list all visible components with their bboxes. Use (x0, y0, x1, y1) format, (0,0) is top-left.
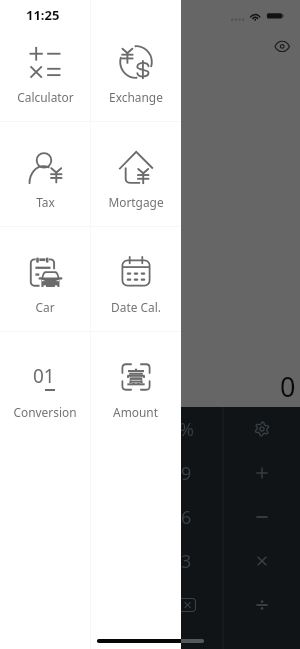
button[interactable]: Minus (250, 505, 274, 529)
staticText: Car (35, 299, 55, 315)
staticText: Amount (113, 404, 158, 420)
button[interactable]: Date Cal. (90, 227, 181, 332)
button[interactable]: Car (0, 227, 90, 332)
button[interactable]: Calculator (0, 17, 90, 122)
button[interactable]: Exchange (90, 17, 181, 122)
button[interactable]: 9 (149, 451, 223, 495)
staticText: Mortgage (108, 194, 164, 210)
staticText: Conversion (13, 404, 77, 420)
button[interactable]: Plus (250, 461, 274, 485)
button[interactable]: Mortgage (90, 122, 181, 227)
staticText: 01 (33, 363, 55, 389)
button[interactable]: History (271, 35, 293, 57)
staticText: Calculator (17, 89, 74, 105)
button[interactable]: Backspace (176, 598, 196, 612)
button[interactable]: 6 (149, 495, 223, 539)
staticText: 3 (181, 549, 192, 574)
button[interactable]: Multiply (250, 549, 274, 573)
staticText: 0 (280, 368, 296, 405)
staticText: Tax (36, 194, 55, 210)
staticText: % (179, 417, 194, 442)
button[interactable]: Settings (250, 417, 274, 441)
button[interactable]: 01 (0, 332, 90, 437)
button[interactable]: Tax (0, 122, 90, 227)
button[interactable]: 3 (149, 539, 223, 583)
staticText: 6 (181, 505, 192, 530)
button[interactable]: Divide (250, 593, 274, 617)
staticText: Exchange (109, 89, 163, 105)
staticText: 9 (181, 461, 192, 486)
staticText: Date Cal. (111, 299, 161, 315)
button[interactable]: % (149, 407, 223, 451)
button[interactable]: Amount (90, 332, 181, 437)
staticText: 11:25 (26, 6, 60, 24)
